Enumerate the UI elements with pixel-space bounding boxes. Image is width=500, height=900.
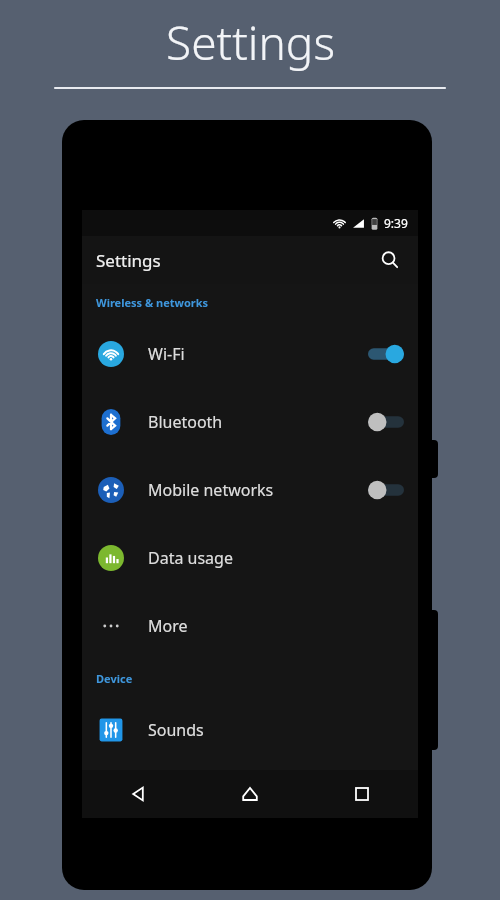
button[interactable]: Back: [82, 770, 194, 818]
staticText: Mobile networks: [148, 479, 368, 501]
button[interactable]: Search: [370, 240, 410, 280]
button[interactable]: Home: [194, 770, 306, 818]
staticText: Device: [96, 671, 133, 686]
staticText: Data usage: [148, 547, 404, 569]
button[interactable]: More: [82, 592, 418, 660]
button[interactable]: Toggle off: [368, 411, 404, 433]
button[interactable]: Wi-Fi: [82, 320, 418, 388]
button[interactable]: Toggle off: [368, 479, 404, 501]
button[interactable]: Sounds: [82, 696, 418, 764]
staticText: Settings: [96, 249, 161, 272]
button[interactable]: Bluetooth: [82, 388, 418, 456]
staticText: More: [148, 615, 404, 637]
button[interactable]: Toggle on: [368, 343, 404, 365]
button[interactable]: Recents: [306, 770, 418, 818]
staticText: Settings: [166, 11, 335, 74]
button[interactable]: Data usage: [82, 524, 418, 592]
button[interactable]: Mobile networks: [82, 456, 418, 524]
staticText: 9:39: [384, 215, 408, 231]
staticText: Wireless & networks: [96, 295, 209, 310]
staticText: Sounds: [148, 719, 404, 741]
staticText: Bluetooth: [148, 411, 368, 433]
staticText: Wi-Fi: [148, 343, 368, 365]
